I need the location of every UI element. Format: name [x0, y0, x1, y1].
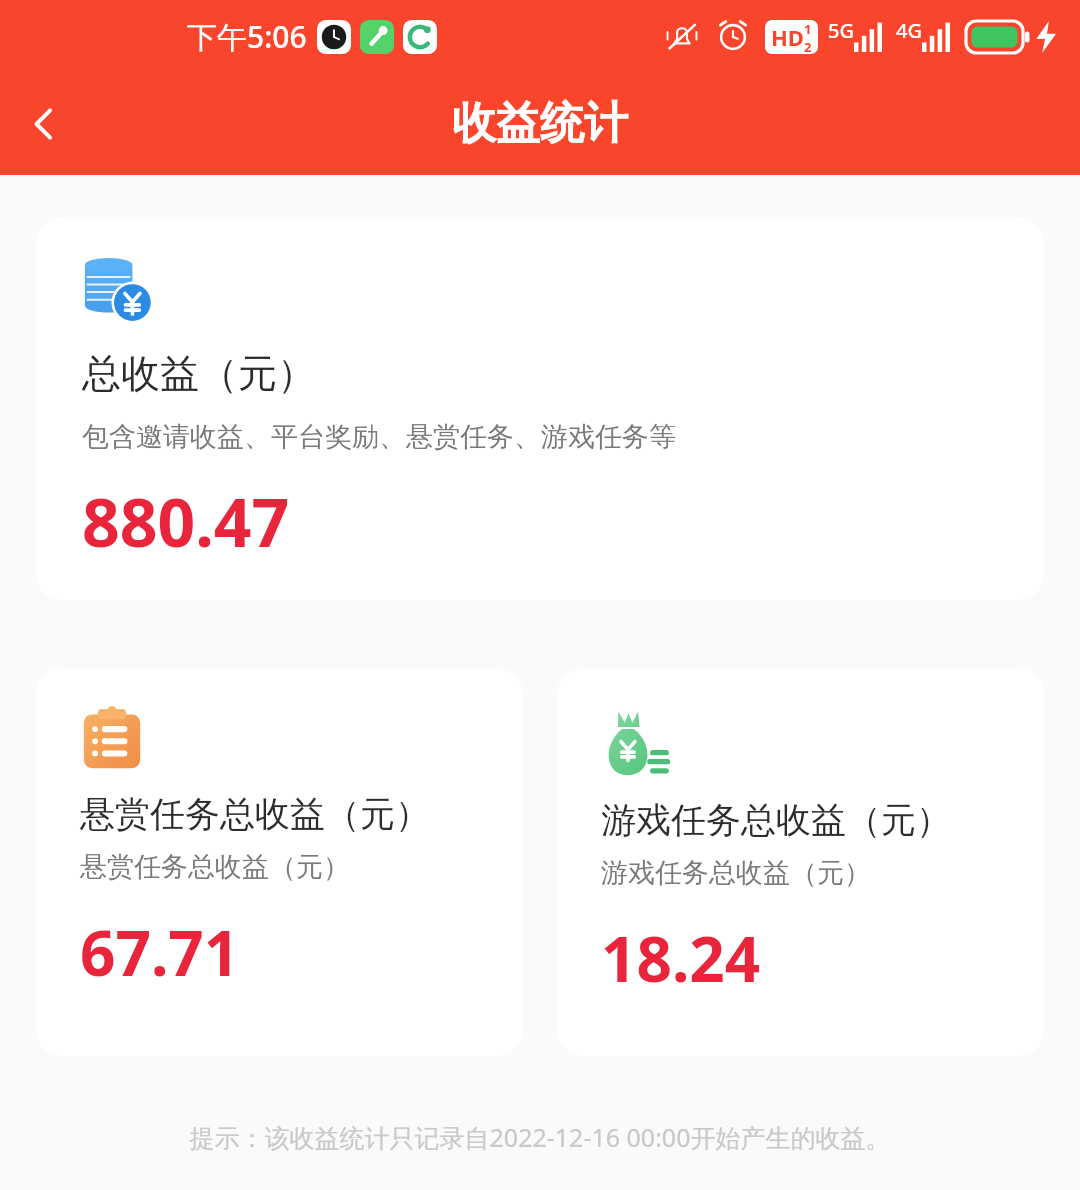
staticText: 悬赏任务总收益（元） — [80, 792, 430, 836]
staticText: 18.24 — [601, 916, 761, 1000]
button[interactable]: Back — [0, 80, 88, 168]
button[interactable]: 悬赏任务总收益（元） — [36, 668, 523, 1056]
staticText: 5G — [828, 17, 854, 44]
staticText: 提示：该收益统计只记录自2022-12-16 00:00开始产生的收益。 — [0, 1120, 1080, 1154]
button[interactable]: 游戏任务总收益（元） — [557, 668, 1044, 1056]
staticText: 游戏任务总收益（元） — [601, 856, 871, 890]
staticText: 下午5:06 — [187, 16, 307, 57]
staticText: HD — [771, 22, 804, 52]
staticText: 880.47 — [82, 476, 290, 566]
staticText: 收益统计 — [452, 96, 628, 151]
staticText: 2 — [804, 38, 812, 54]
staticText: 包含邀请收益、平台奖励、悬赏任务、游戏任务等 — [82, 420, 676, 454]
staticText: 1 — [804, 20, 812, 38]
button[interactable]: 总收益（元） — [36, 217, 1044, 600]
staticText: 悬赏任务总收益（元） — [80, 850, 350, 884]
staticText: 4G — [896, 17, 922, 44]
staticText: 67.71 — [80, 910, 240, 994]
staticText: 游戏任务总收益（元） — [601, 798, 951, 842]
staticText: 总收益（元） — [82, 349, 316, 398]
